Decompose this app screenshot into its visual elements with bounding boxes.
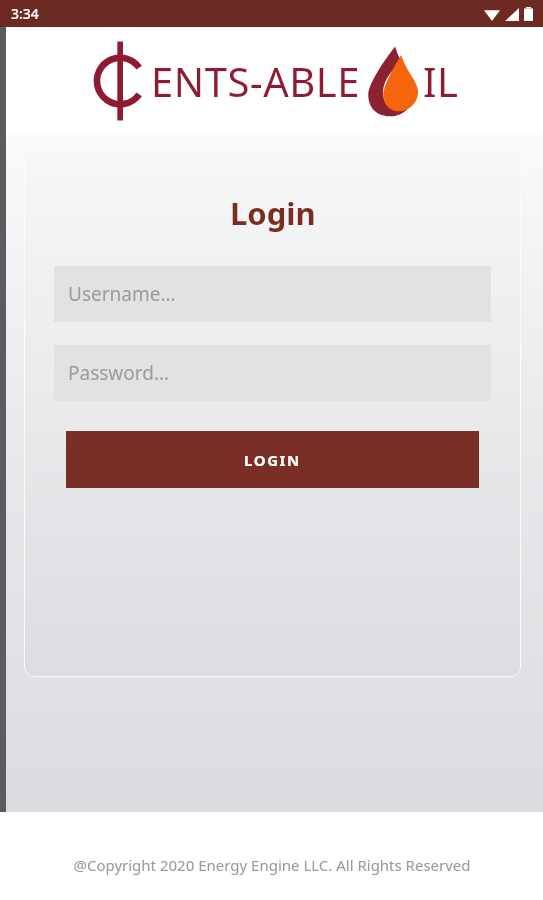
button[interactable]: Password... (54, 345, 491, 401)
staticText: Login (230, 192, 316, 234)
staticText: @Copyright 2020 Energy Engine LLC. All R… (73, 855, 471, 875)
staticText: Username... (68, 281, 176, 307)
staticText: LOGIN (244, 450, 301, 470)
staticText: ENTS-ABLE (151, 54, 360, 108)
staticText: IL (423, 54, 459, 108)
button[interactable]: Username... (54, 266, 491, 322)
staticText: 3:34 (11, 4, 39, 23)
staticText: Password... (68, 360, 170, 386)
button[interactable]: LOGIN (66, 431, 479, 488)
